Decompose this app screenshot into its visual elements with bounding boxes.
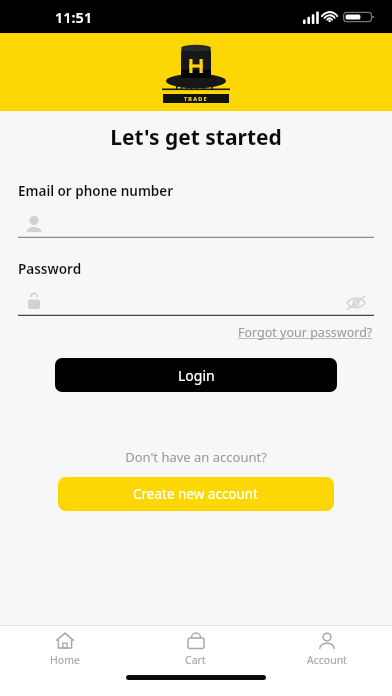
staticText: Account: [307, 653, 347, 667]
staticText: TRADE: [184, 95, 208, 102]
staticText: 11:51: [55, 7, 93, 27]
staticText: Forgot your password?: [238, 324, 373, 341]
button[interactable]: Cart: [130, 630, 261, 667]
button[interactable]: [18, 290, 374, 316]
staticText: Cart: [185, 653, 206, 667]
button[interactable]: Account: [261, 630, 392, 667]
staticText: Don't have an account?: [0, 448, 392, 466]
button[interactable]: Login: [55, 358, 337, 392]
staticText: Email or phone number: [18, 182, 174, 200]
staticText: Let's get started: [0, 123, 392, 152]
staticText: HATLY: [175, 78, 218, 93]
staticText: Home: [50, 653, 80, 667]
button[interactable]: [18, 212, 374, 238]
staticText: Password: [18, 260, 82, 278]
button[interactable]: Home: [0, 630, 130, 667]
staticText: Create new account: [133, 485, 259, 503]
staticText: Login: [178, 366, 215, 385]
button[interactable]: Forgot your password?: [238, 324, 373, 341]
button[interactable]: Create new account: [58, 477, 334, 511]
